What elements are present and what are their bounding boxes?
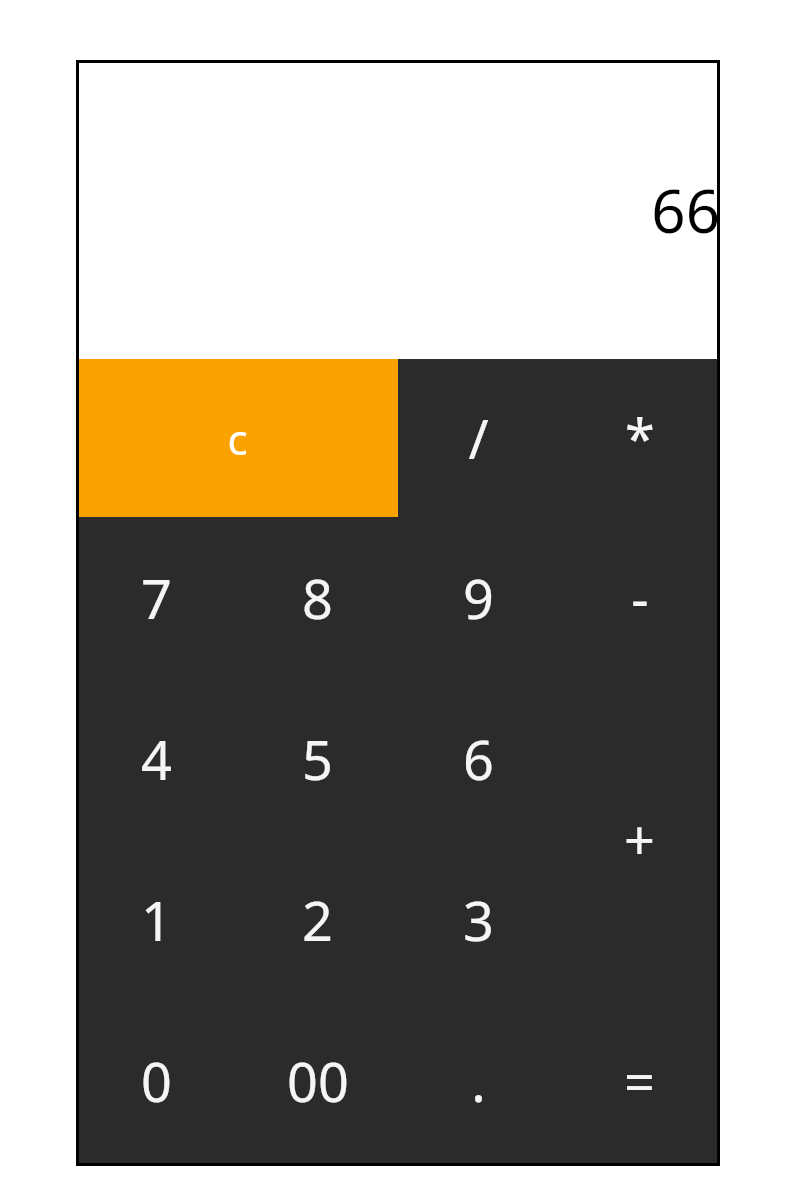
button[interactable]: * (559, 359, 720, 517)
staticText: 9 (463, 561, 494, 635)
button[interactable]: 66 (76, 60, 720, 359)
staticText: + (624, 802, 655, 876)
staticText: 8 (302, 561, 333, 635)
button[interactable]: 8 (237, 517, 398, 678)
staticText: 6 (463, 722, 494, 796)
button[interactable]: c (76, 359, 398, 517)
staticText: 5 (302, 722, 333, 796)
button[interactable]: 3 (398, 839, 559, 1000)
button[interactable]: 1 (76, 839, 237, 1000)
button[interactable]: 2 (237, 839, 398, 1000)
staticText: 1 (141, 883, 172, 957)
staticText: 00 (287, 1044, 349, 1118)
button[interactable]: + (559, 678, 720, 1000)
staticText: - (631, 561, 649, 635)
staticText: 66 (651, 169, 720, 251)
staticText: 3 (463, 883, 494, 957)
button[interactable]: 7 (76, 517, 237, 678)
staticText: c (227, 410, 248, 467)
button[interactable]: 6 (398, 678, 559, 839)
button[interactable]: 00 (237, 1000, 398, 1161)
staticText: * (625, 401, 655, 475)
button[interactable]: = (559, 1000, 720, 1161)
staticText: / (468, 401, 489, 475)
staticText: 2 (302, 883, 333, 957)
button[interactable]: 9 (398, 517, 559, 678)
staticText: . (471, 1044, 486, 1118)
staticText: = (624, 1044, 655, 1118)
staticText: 0 (141, 1044, 172, 1118)
staticText: 4 (141, 722, 172, 796)
button[interactable]: 0 (76, 1000, 237, 1161)
button[interactable]: 5 (237, 678, 398, 839)
button[interactable]: 4 (76, 678, 237, 839)
button[interactable]: - (559, 517, 720, 678)
button[interactable]: / (398, 359, 559, 517)
staticText: 7 (141, 561, 172, 635)
button[interactable]: . (398, 1000, 559, 1161)
